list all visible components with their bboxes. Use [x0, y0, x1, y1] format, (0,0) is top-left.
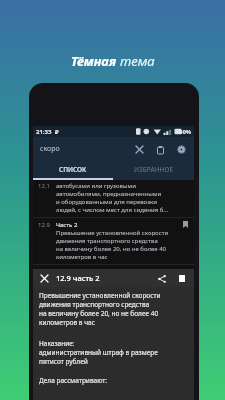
staticText: 50% — [179, 128, 192, 136]
staticText: тема — [120, 52, 155, 70]
staticText: ₽ — [55, 128, 59, 136]
staticText: Наказание: — [39, 339, 75, 348]
staticText: Тёмная — [71, 52, 117, 70]
staticText: Дела рассматривают: — [39, 376, 108, 385]
button[interactable]: Settings — [174, 142, 189, 157]
staticText: автобусами или грузовыми автомобилями, п… — [56, 182, 190, 214]
button[interactable]: Bookmark — [180, 221, 191, 232]
button[interactable]: Share — [154, 271, 169, 286]
button[interactable]: Close — [37, 271, 52, 286]
staticText: Превышение установленной скорости движен… — [39, 291, 161, 327]
staticText: 12.9 часть 2 — [56, 273, 100, 283]
staticText: административный штраф в размере пятисот… — [39, 348, 158, 366]
button[interactable]: СПИСОК — [33, 161, 113, 178]
staticText: 21:33 — [36, 128, 52, 136]
button[interactable]: Paste from clipboard — [153, 142, 168, 157]
button[interactable]: Bookmark — [174, 271, 189, 286]
button[interactable]: ИЗБРАННОЕ — [113, 161, 194, 178]
staticText: 12.9 — [38, 221, 56, 229]
staticText: 12.1 — [38, 182, 56, 190]
staticText: Часть 2 — [56, 221, 78, 229]
button[interactable]: 12.1 — [33, 180, 194, 217]
staticText: скоро — [40, 144, 60, 154]
button[interactable]: Clear search — [132, 142, 147, 157]
staticText: Превышение установленной скорости движен… — [56, 229, 169, 261]
staticText: ИЗБРАННОЕ — [134, 165, 174, 174]
staticText: СПИСОК — [59, 165, 87, 174]
button[interactable]: 12.9 — [33, 218, 194, 264]
